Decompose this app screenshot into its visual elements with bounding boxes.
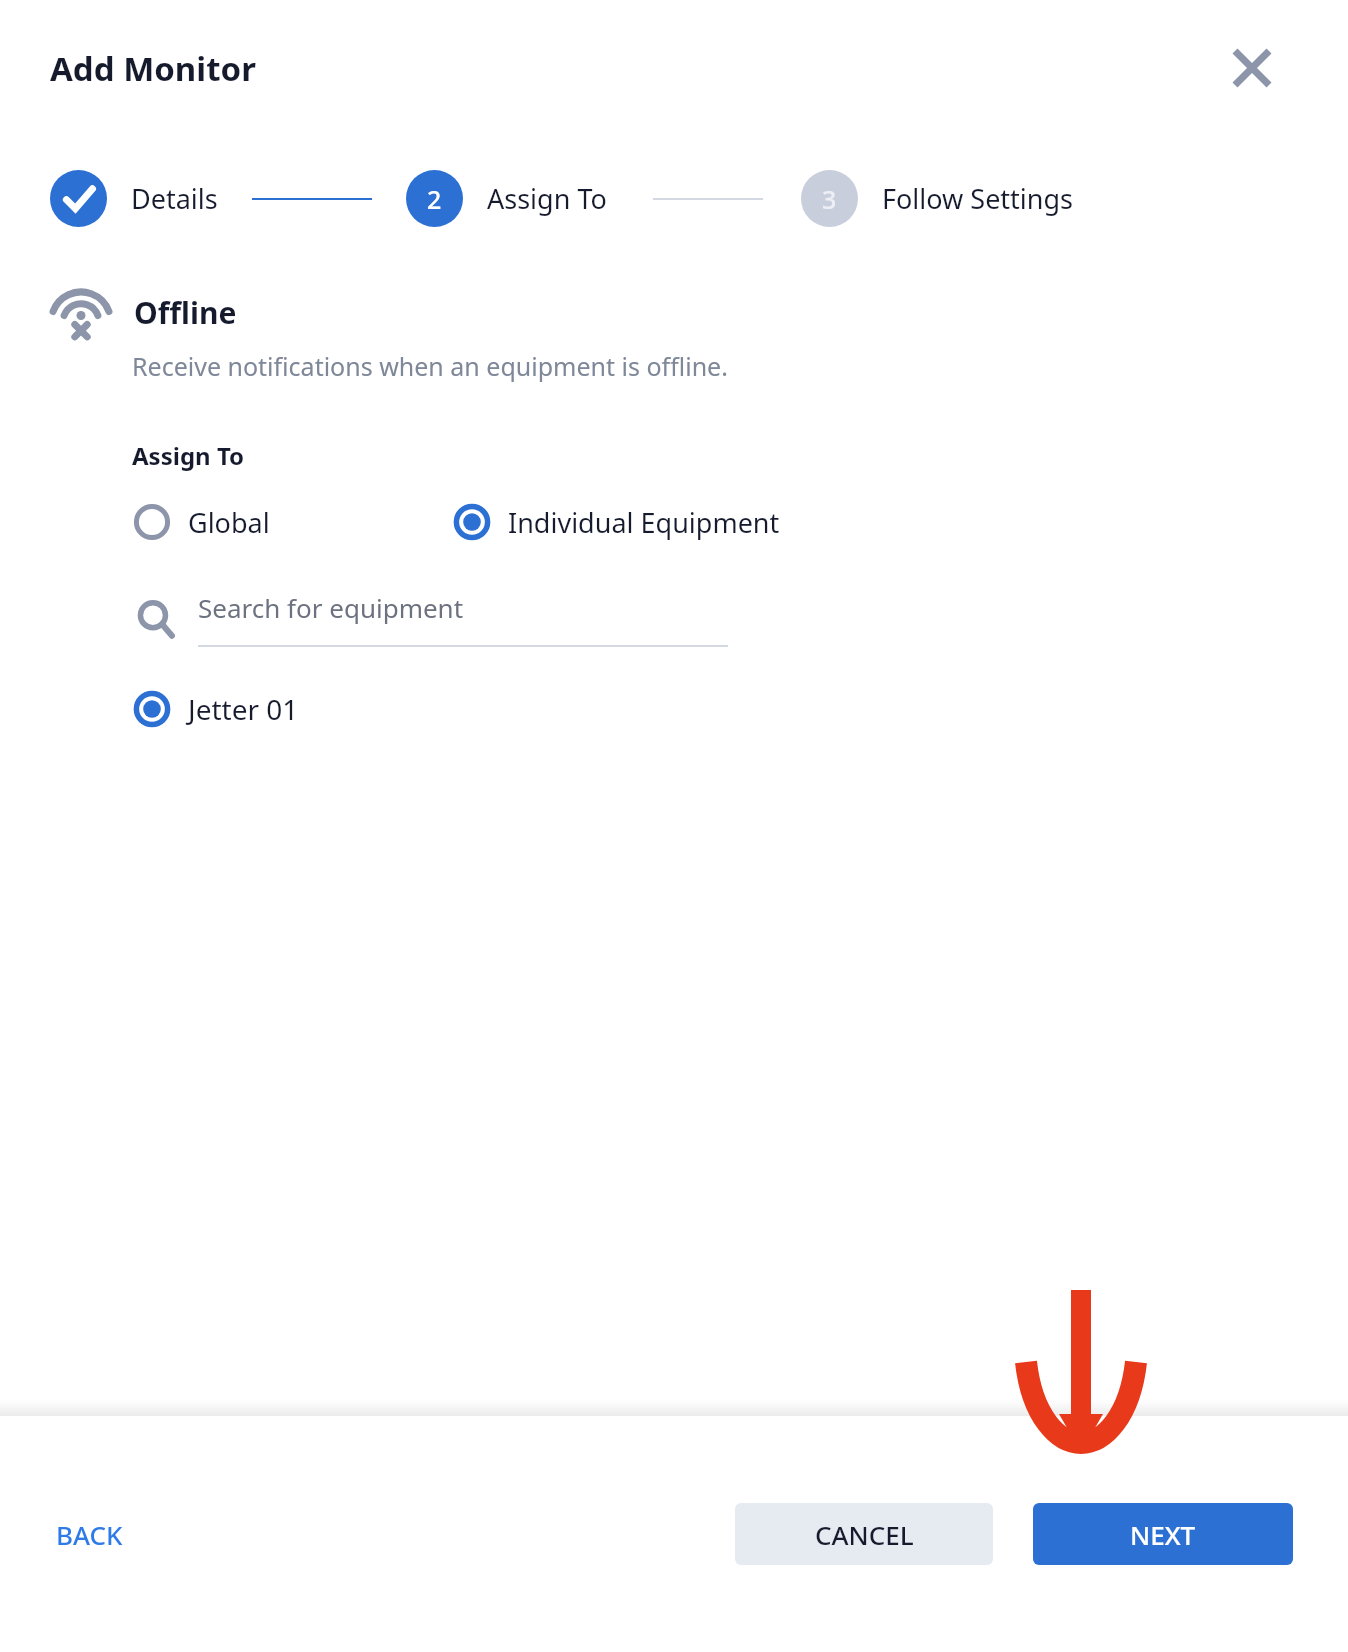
button[interactable]: Close bbox=[1220, 36, 1284, 100]
staticText: Add Monitor bbox=[50, 46, 256, 91]
staticText: CANCEL bbox=[815, 1517, 914, 1552]
staticText: Jetter 01 bbox=[188, 690, 299, 728]
staticText: 3 bbox=[822, 182, 837, 216]
staticText: Assign To bbox=[487, 180, 607, 217]
staticText: Search for equipment bbox=[198, 590, 464, 625]
button[interactable]: Global bbox=[132, 502, 270, 542]
button[interactable]: NEXT bbox=[1033, 1503, 1293, 1565]
button[interactable]: BACK bbox=[50, 1507, 129, 1562]
staticText: Details bbox=[131, 180, 218, 217]
staticText: Offline bbox=[134, 292, 237, 333]
button[interactable]: 2 bbox=[406, 170, 607, 227]
button[interactable]: Individual Equipment bbox=[452, 502, 780, 542]
staticText: Global bbox=[188, 504, 270, 541]
button[interactable]: Jetter 01 bbox=[132, 689, 299, 729]
staticText: Individual Equipment bbox=[508, 504, 780, 541]
staticText: Assign To bbox=[132, 439, 245, 472]
staticText: 2 bbox=[427, 182, 442, 216]
staticText: BACK bbox=[56, 1517, 123, 1552]
button[interactable]: Details bbox=[50, 170, 218, 227]
button[interactable]: 3 bbox=[801, 170, 1074, 227]
staticText: Receive notifications when an equipment … bbox=[132, 349, 728, 383]
button[interactable]: CANCEL bbox=[735, 1503, 993, 1565]
staticText: Follow Settings bbox=[882, 180, 1074, 217]
staticText: NEXT bbox=[1130, 1517, 1196, 1552]
